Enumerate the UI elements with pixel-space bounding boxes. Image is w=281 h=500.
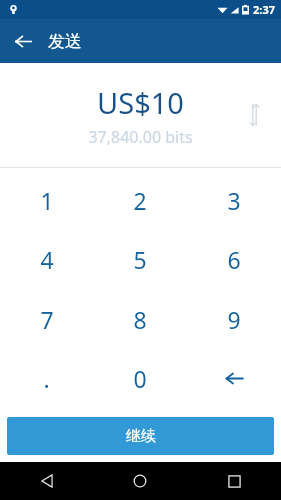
button[interactable]: Back xyxy=(0,462,93,500)
staticText: 继续 xyxy=(126,427,156,446)
staticText: 8 xyxy=(133,304,147,335)
button[interactable]: 继续 xyxy=(7,417,274,455)
button[interactable]: 8 xyxy=(93,291,187,347)
staticText: 0 xyxy=(133,363,147,394)
staticText: 3 xyxy=(227,185,241,216)
staticText: 2 xyxy=(133,185,147,216)
button[interactable]: 4 xyxy=(0,231,93,287)
button[interactable]: Recent apps xyxy=(187,462,281,500)
staticText: . xyxy=(43,363,50,394)
button[interactable]: Home xyxy=(93,462,187,500)
staticText: 发送 xyxy=(48,31,82,52)
staticText: 4 xyxy=(40,244,54,275)
staticText: 6 xyxy=(227,244,241,275)
button[interactable]: 9 xyxy=(187,291,281,347)
button[interactable]: Back xyxy=(10,28,36,54)
button[interactable]: 3 xyxy=(187,172,281,228)
staticText: 37,840.00 bits xyxy=(88,126,193,148)
button[interactable]: 5 xyxy=(93,231,187,287)
button[interactable]: 0 xyxy=(93,350,187,406)
button[interactable]: Backspace xyxy=(187,350,281,406)
button[interactable]: 1 xyxy=(0,172,93,228)
button[interactable]: 7 xyxy=(0,291,93,347)
button[interactable]: . xyxy=(0,350,93,406)
staticText: US$10 xyxy=(97,83,184,122)
button[interactable]: 2 xyxy=(93,172,187,228)
staticText: 7 xyxy=(40,304,54,335)
staticText: 1 xyxy=(40,185,54,216)
staticText: 2:37 xyxy=(253,2,275,17)
staticText: 9 xyxy=(227,304,241,335)
staticText: 5 xyxy=(133,244,147,275)
button[interactable]: Swap currency xyxy=(237,98,271,132)
button[interactable]: 6 xyxy=(187,231,281,287)
